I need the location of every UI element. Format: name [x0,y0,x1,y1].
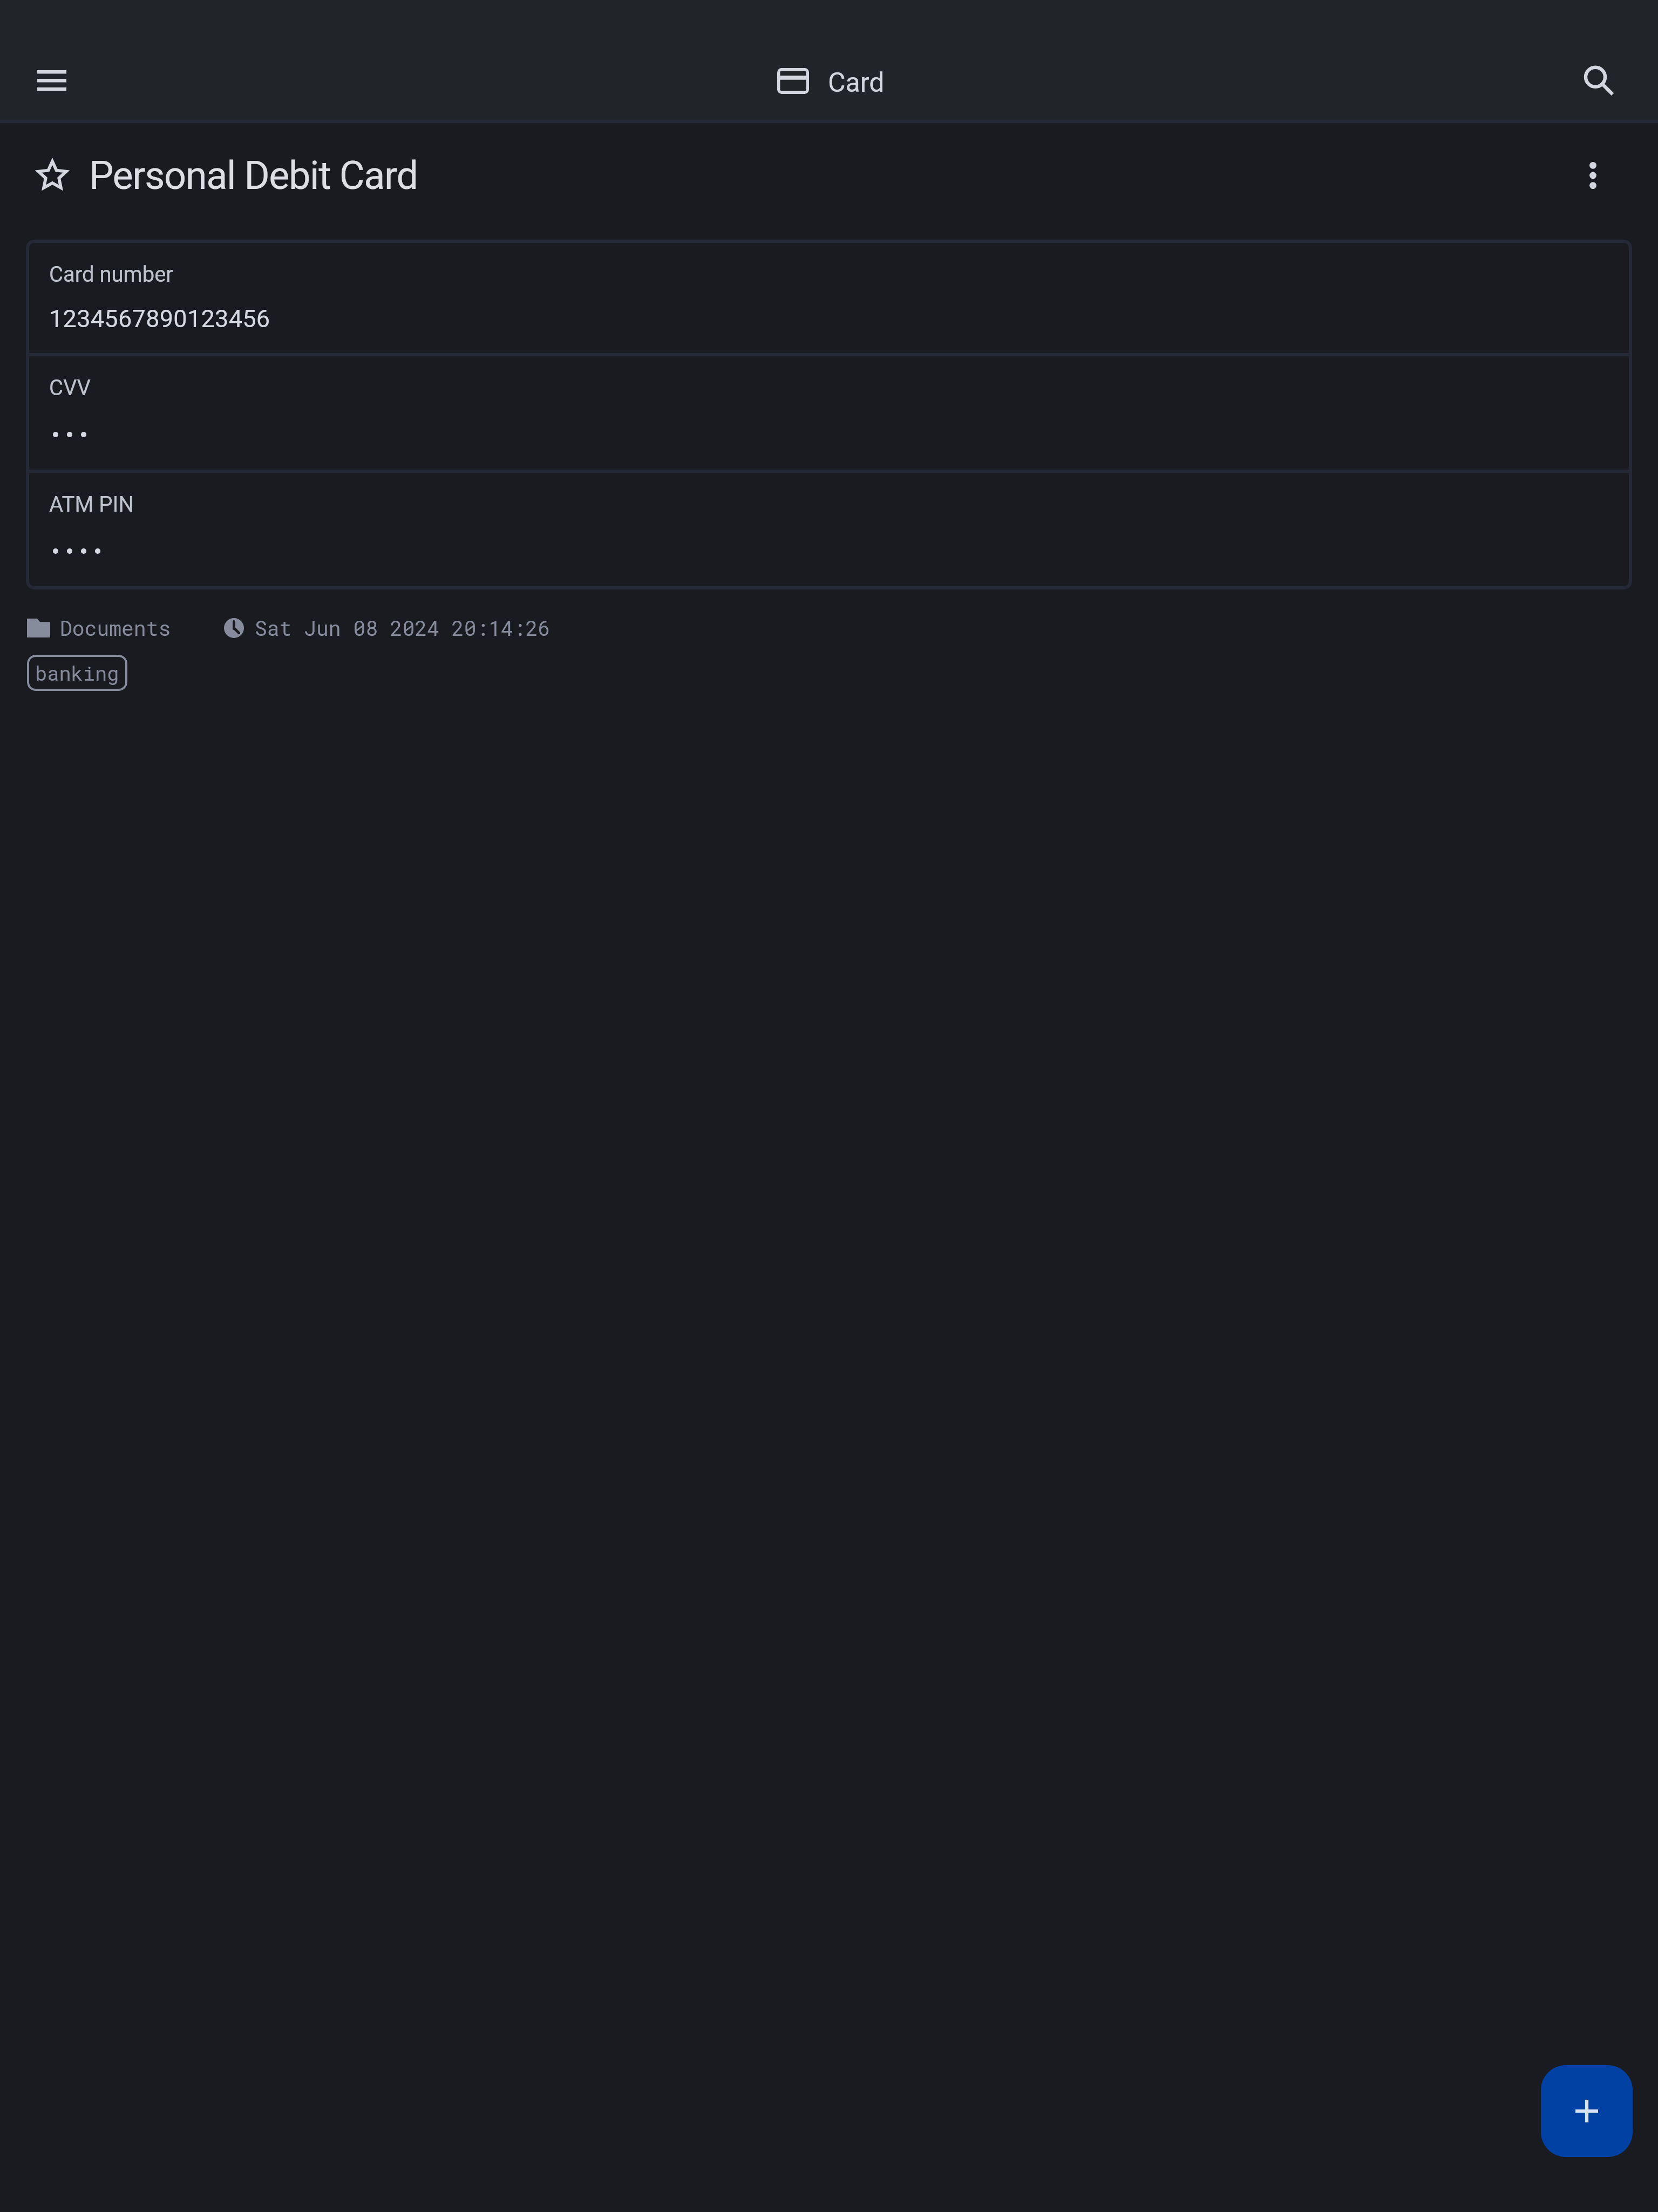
button[interactable]: banking [27,655,127,691]
button[interactable]: Card number [29,243,1629,353]
staticText: Documents [60,614,171,641]
button[interactable]: Add new item [1541,2065,1633,2157]
button[interactable]: CVV [29,356,1629,470]
staticText: Card number [49,262,173,287]
button[interactable]: Open navigation menu [28,57,76,105]
staticText: ATM PIN [49,492,134,517]
staticText: Sat Jun 08 2024 20:14:26 [255,614,551,641]
button[interactable]: ATM PIN [29,473,1629,586]
staticText: banking [35,660,119,686]
staticText: CVV [49,375,91,401]
staticText: 1234567890123456 [49,304,270,333]
button[interactable]: Search [1575,57,1622,105]
button[interactable]: More options [1568,151,1617,200]
staticText: Card [828,67,885,99]
staticText: Personal Debit Card [89,153,418,198]
button[interactable]: Add to favourites [28,151,77,200]
